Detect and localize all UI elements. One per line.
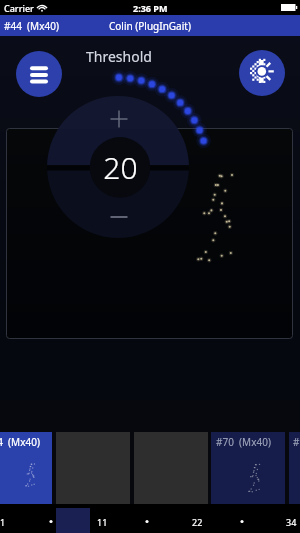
- staticText: #: [293, 435, 300, 449]
- button[interactable]: Marker view: [239, 50, 285, 96]
- staticText: Carrier: [4, 2, 34, 14]
- staticText: Colin (PlugInGait): [109, 19, 191, 33]
- button[interactable]: [0, 432, 52, 504]
- staticText: Threshold: [86, 47, 152, 66]
- staticText: 1: [0, 516, 6, 528]
- button[interactable]: 20: [90, 137, 150, 197]
- button[interactable]: [211, 432, 285, 504]
- staticText: 22: [192, 516, 203, 528]
- button[interactable]: Decrease threshold: [105, 203, 133, 231]
- staticText: 11: [97, 516, 108, 528]
- staticText: 2:36 PM: [133, 2, 168, 14]
- button[interactable]: [289, 432, 300, 504]
- staticText: 34: [286, 516, 297, 528]
- staticText: #70 (Mx40): [216, 435, 271, 449]
- button[interactable]: Menu: [16, 51, 62, 97]
- button[interactable]: Increase threshold: [105, 105, 133, 133]
- staticText: #44 (Mx40): [4, 19, 59, 33]
- staticText: 20: [103, 147, 138, 188]
- staticText: #44 (Mx40): [0, 435, 40, 449]
